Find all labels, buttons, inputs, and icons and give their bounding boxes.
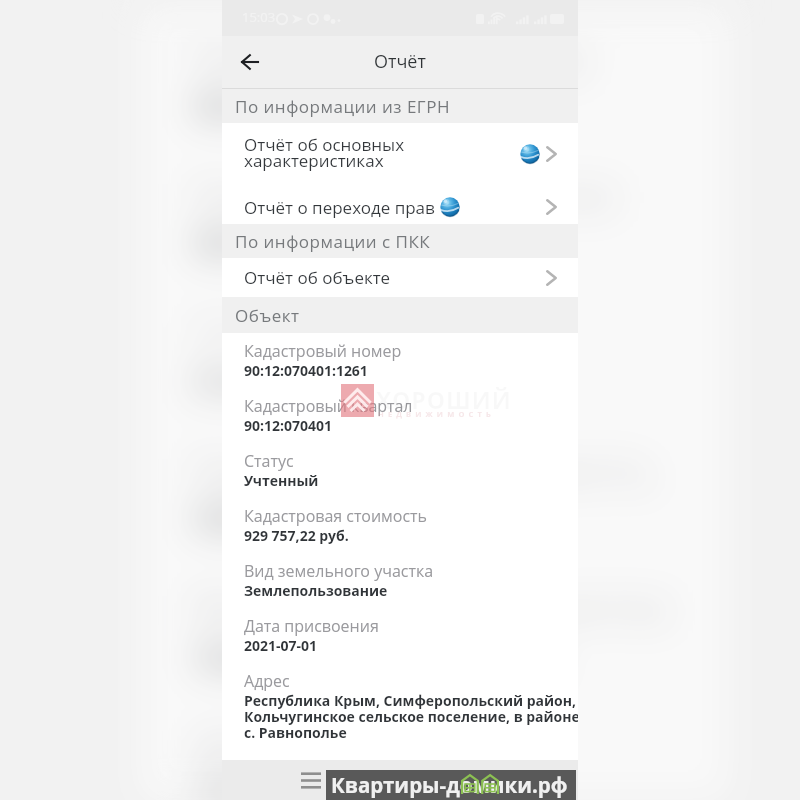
- staticText: Дата присвоения: [244, 615, 379, 637]
- staticText: Кольчугинское сельское поселение, в райо…: [244, 707, 578, 726]
- staticText: Статус: [195, 305, 320, 360]
- staticText: Кадастровый номер: [195, 30, 590, 85]
- staticText: Квартиры-домики.рф: [331, 771, 568, 799]
- staticText: 929 757,22 руб.: [244, 526, 349, 545]
- staticText: Отчёт об объекте: [244, 266, 391, 289]
- staticText: Учтенный: [244, 471, 319, 490]
- staticText: Статус: [244, 450, 294, 472]
- staticText: Отчёт: [374, 49, 426, 74]
- staticText: Отчёт о переходе прав: [244, 196, 435, 219]
- staticText: Учтенный: [195, 357, 382, 405]
- staticText: Адрес: [244, 670, 290, 692]
- staticText: По информации из ЕГРН: [235, 95, 450, 118]
- staticText: 90:12:070401:1261: [244, 361, 368, 380]
- button[interactable]: Отчёт об объекте: [222, 258, 578, 297]
- staticText: ХОРОШИЙ: [376, 384, 512, 415]
- staticText: Кадастровая стоимость: [244, 505, 428, 527]
- staticText: Кадастровый квартал: [195, 167, 617, 222]
- staticText: Вид земельного участка: [244, 560, 434, 582]
- staticText: 2021-07-01: [195, 770, 377, 800]
- staticText: Республика Крым, Симферопольский район,: [244, 691, 577, 710]
- staticText: 2021-07-01: [244, 636, 317, 655]
- staticText: Вид земельного участка: [195, 580, 670, 635]
- staticText: Объект: [235, 304, 300, 327]
- staticText: По информации с ПКК: [235, 230, 431, 253]
- staticText: 90:12:070401:1261: [195, 82, 505, 130]
- button[interactable]: Отчёт об основных: [222, 123, 578, 190]
- staticText: Н Е Д В И Ж И М О С Т Ь: [378, 409, 492, 419]
- staticText: 90:12:070401: [244, 416, 332, 435]
- button[interactable]: Назад: [227, 41, 271, 85]
- button[interactable]: Отчёт о переходе прав: [222, 190, 578, 224]
- staticText: Кадастровый квартал: [244, 395, 413, 417]
- staticText: Отчёт об основных: [244, 133, 405, 156]
- staticText: Кадастровая стоимость: [195, 442, 655, 497]
- staticText: 929 757,22 руб.: [195, 495, 457, 542]
- staticText: Дата присвоения: [195, 717, 532, 772]
- staticText: характеристиках: [244, 149, 384, 172]
- staticText: Кадастровый номер: [244, 340, 402, 362]
- staticText: 90:12:070401: [195, 220, 415, 267]
- staticText: с. Равнополье: [244, 723, 347, 742]
- staticText: Землепользование: [195, 632, 555, 680]
- staticText: Землепользование: [244, 581, 388, 600]
